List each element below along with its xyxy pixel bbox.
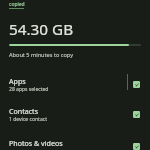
staticText: 54.30 GB (9, 19, 74, 40)
staticText: Contacts (9, 106, 39, 116)
staticText: 1 device contact (9, 116, 47, 123)
button[interactable]: Photos & videos (0, 138, 150, 150)
button[interactable]: Apps selected (133, 81, 140, 88)
staticText: About 5 minutes to copy (9, 51, 73, 59)
staticText: Apps (9, 76, 26, 86)
button[interactable]: copied (9, 1, 25, 8)
button[interactable]: Apps (0, 76, 150, 106)
button[interactable]: Contacts selected (133, 111, 140, 118)
staticText: copied (9, 1, 25, 8)
button[interactable]: Contacts (0, 106, 150, 136)
button[interactable]: Photos & videos selected (133, 143, 140, 150)
staticText: 28 apps selected (9, 86, 49, 93)
staticText: Photos & videos (9, 138, 63, 148)
